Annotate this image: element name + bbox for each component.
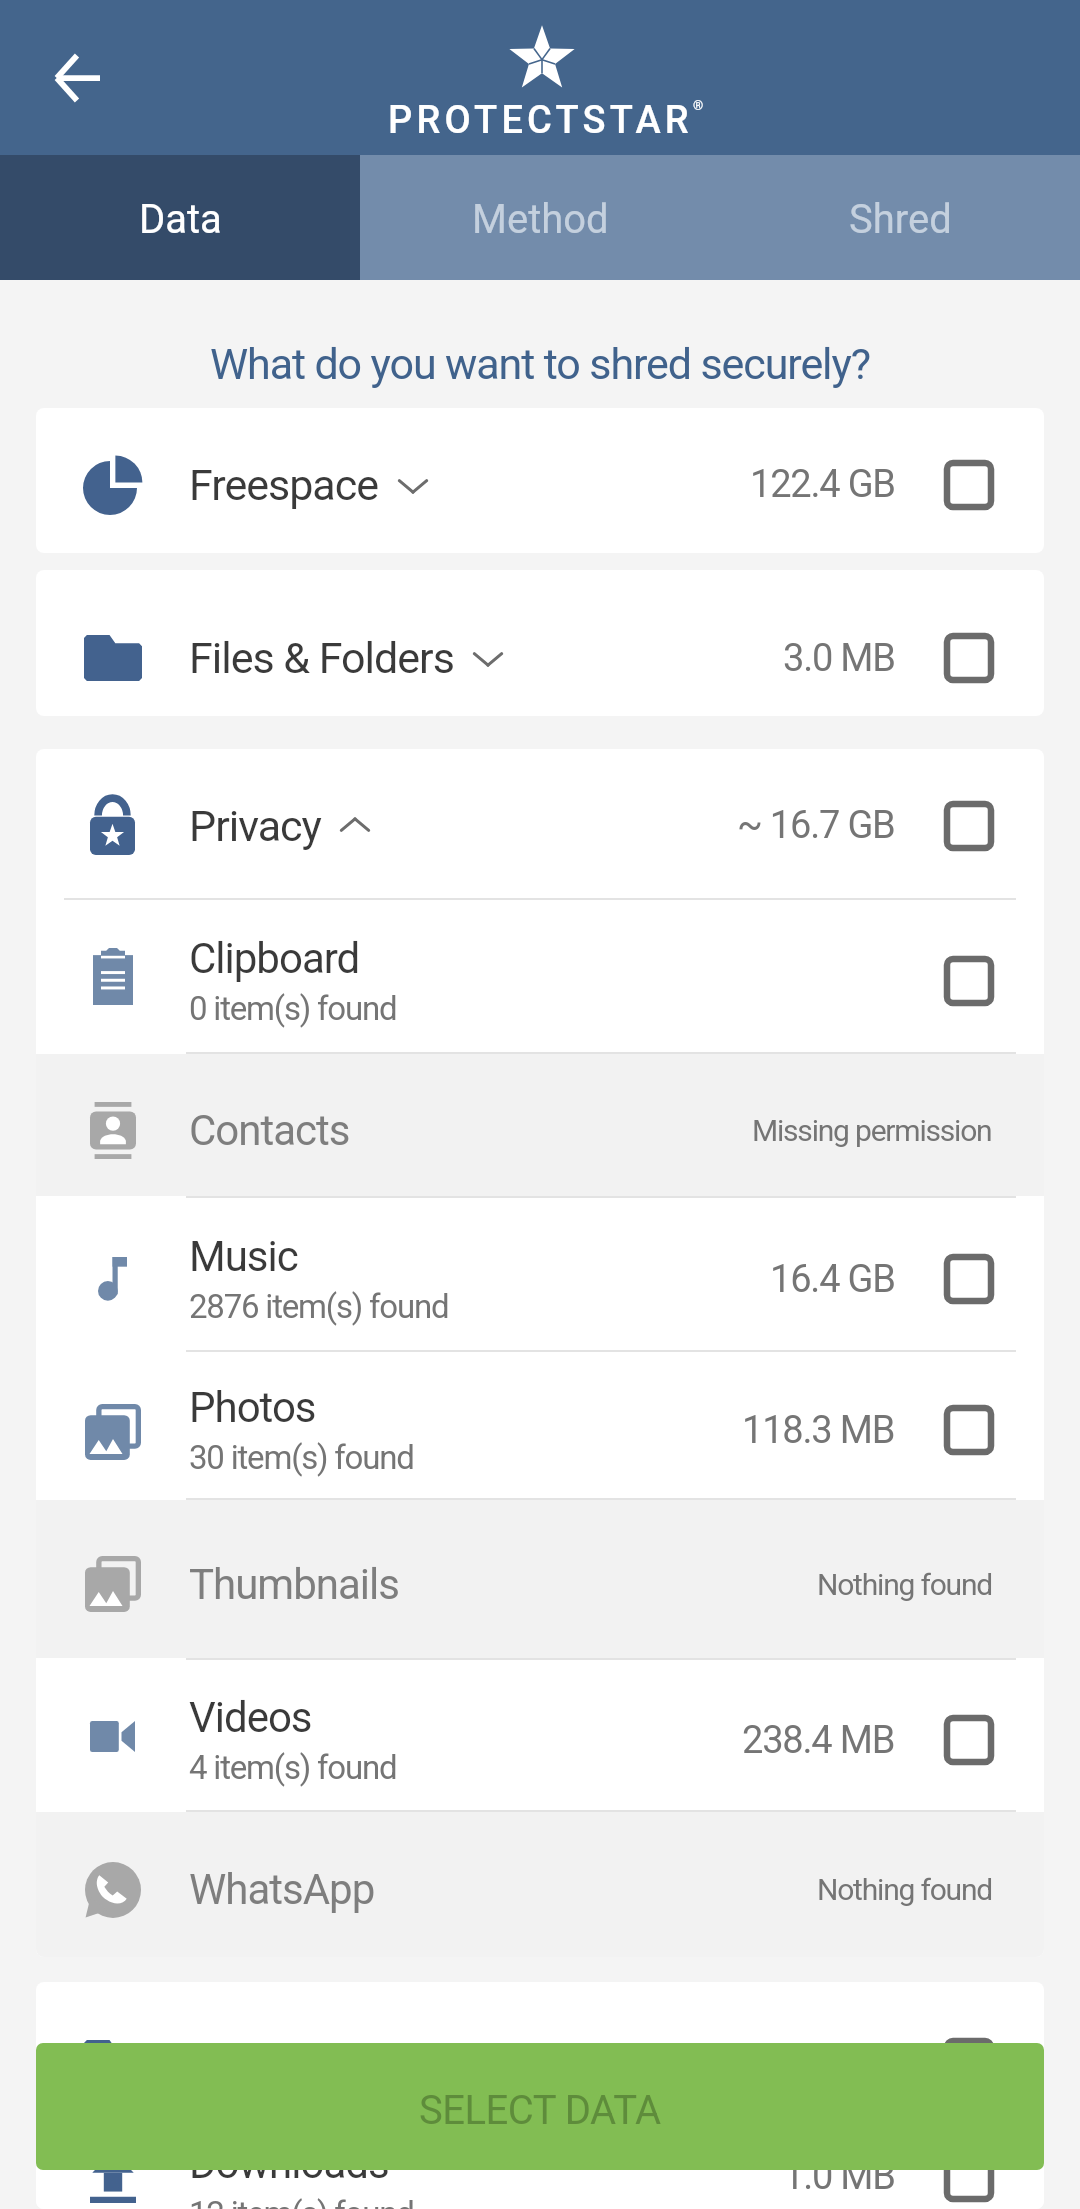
staticText: 4 item(s) found [189,1748,397,1787]
button[interactable]: Clipboard [36,900,1044,1052]
staticText: Music [189,1232,298,1281]
staticText: Data [139,196,222,243]
button[interactable]: Back [29,30,125,126]
staticText: 122.4 GB [750,462,895,507]
staticText: Nothing found [817,1567,992,1602]
button[interactable]: Downloads [36,2134,1044,2209]
staticText: Shred [849,196,952,243]
staticText: PROTECTSTAR [388,98,693,143]
button[interactable]: Select [927,1698,1011,1782]
button[interactable]: Photos [36,1352,1044,1498]
staticText: 118.3 MB [742,1408,895,1453]
button[interactable]: Music [36,1198,1044,1350]
staticText: 0 item(s) found [189,989,397,1028]
staticText: Photos [189,1383,316,1432]
button[interactable]: Select [927,1388,1011,1472]
button[interactable]: Freespace [36,408,1044,553]
button[interactable]: System [36,1982,1044,2132]
button[interactable]: Select [927,2021,1011,2105]
staticText: Downloads [189,2139,389,2188]
staticText: Privacy [189,801,321,851]
button[interactable]: Contacts [36,1054,1044,1196]
button[interactable]: Privacy [36,749,1044,898]
staticText: Videos [189,1693,312,1742]
button[interactable]: Data [0,155,360,280]
button[interactable]: Select [927,1237,1011,1321]
staticText: 16.4 GB [770,1257,895,1302]
button[interactable]: Method [360,155,720,280]
button[interactable]: Thumbnails [36,1500,1044,1658]
staticText: What do you want to shred securely? [210,339,870,389]
button[interactable]: WhatsApp [36,1812,1044,1957]
staticText: Clipboard [189,934,360,983]
staticText: 1.0 MB [783,2154,895,2199]
staticText: SELECT DATA [419,2087,661,2134]
staticText: Freespace [189,460,379,510]
staticText: Method [472,196,609,243]
button[interactable]: Select [927,784,1011,868]
button[interactable]: Select [927,616,1011,700]
staticText: 12 item(s) found [189,2194,414,2209]
button[interactable]: Select [927,939,1011,1023]
staticText: Missing permission [752,1113,992,1148]
staticText: ® [693,98,704,113]
staticText: 238.4 MB [742,1718,895,1763]
button[interactable]: Select [927,443,1011,527]
button[interactable]: SELECT DATA [36,2043,1044,2170]
button[interactable]: Videos [36,1660,1044,1810]
staticText: WhatsApp [189,1865,375,1914]
staticText: Contacts [189,1106,350,1155]
staticText: System [189,2038,326,2088]
staticText: Files & Folders [189,633,454,683]
button[interactable]: Files & Folders [36,570,1044,716]
staticText: Nothing found [817,1872,992,1907]
staticText: 3.0 MB [783,636,895,681]
staticText: Thumbnails [189,1560,399,1609]
staticText: 2876 item(s) found [189,1287,449,1326]
staticText: ~ 16.7 GB [737,803,895,848]
staticText: 1.0 MB [783,2041,895,2086]
button[interactable]: Shred [720,155,1080,280]
button[interactable]: Select [927,2139,1011,2209]
staticText: 30 item(s) found [189,1438,414,1477]
